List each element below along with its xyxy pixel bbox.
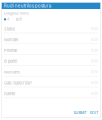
staticText: 0/20 — [91, 81, 98, 85]
staticText: Nombre — [4, 37, 18, 42]
button[interactable]: Nombres — [4, 66, 98, 76]
button[interactable]: A — [4, 17, 9, 21]
staticText: 0/20 — [91, 92, 98, 96]
staticText: EDIT — [90, 110, 98, 115]
staticText: Gregorus forms — [4, 11, 29, 15]
button[interactable]: Status — [4, 22, 98, 33]
button[interactable]: Gab. subscriby? — [4, 76, 98, 87]
button[interactable]: El polite — [4, 55, 98, 66]
staticText: Provide — [4, 48, 17, 53]
staticText: 0/20 — [91, 59, 98, 63]
button[interactable]: Nombre — [4, 33, 98, 44]
staticText: 0/20 — [91, 70, 98, 74]
staticText: Gab. subscriby? — [4, 80, 32, 85]
staticText: SUBMIT — [74, 110, 87, 115]
staticText: Rudi neutrilos postura — [4, 3, 52, 9]
button[interactable]: Fuente — [4, 87, 98, 98]
button[interactable]: Provide — [4, 44, 98, 55]
button[interactable]: B — [16, 17, 21, 21]
staticText: Status — [4, 26, 15, 31]
staticText: Fuente — [4, 91, 15, 96]
button[interactable]: SUBMIT — [74, 110, 87, 115]
staticText: 0/20 — [91, 27, 98, 31]
button[interactable]: EDIT — [90, 110, 98, 115]
staticText: A — [7, 17, 9, 21]
staticText: 0/20 — [91, 38, 98, 42]
staticText: Nombres — [4, 70, 20, 74]
staticText: 0/20 — [91, 49, 98, 52]
staticText: El polite — [4, 59, 17, 64]
staticText: B — [19, 17, 21, 21]
